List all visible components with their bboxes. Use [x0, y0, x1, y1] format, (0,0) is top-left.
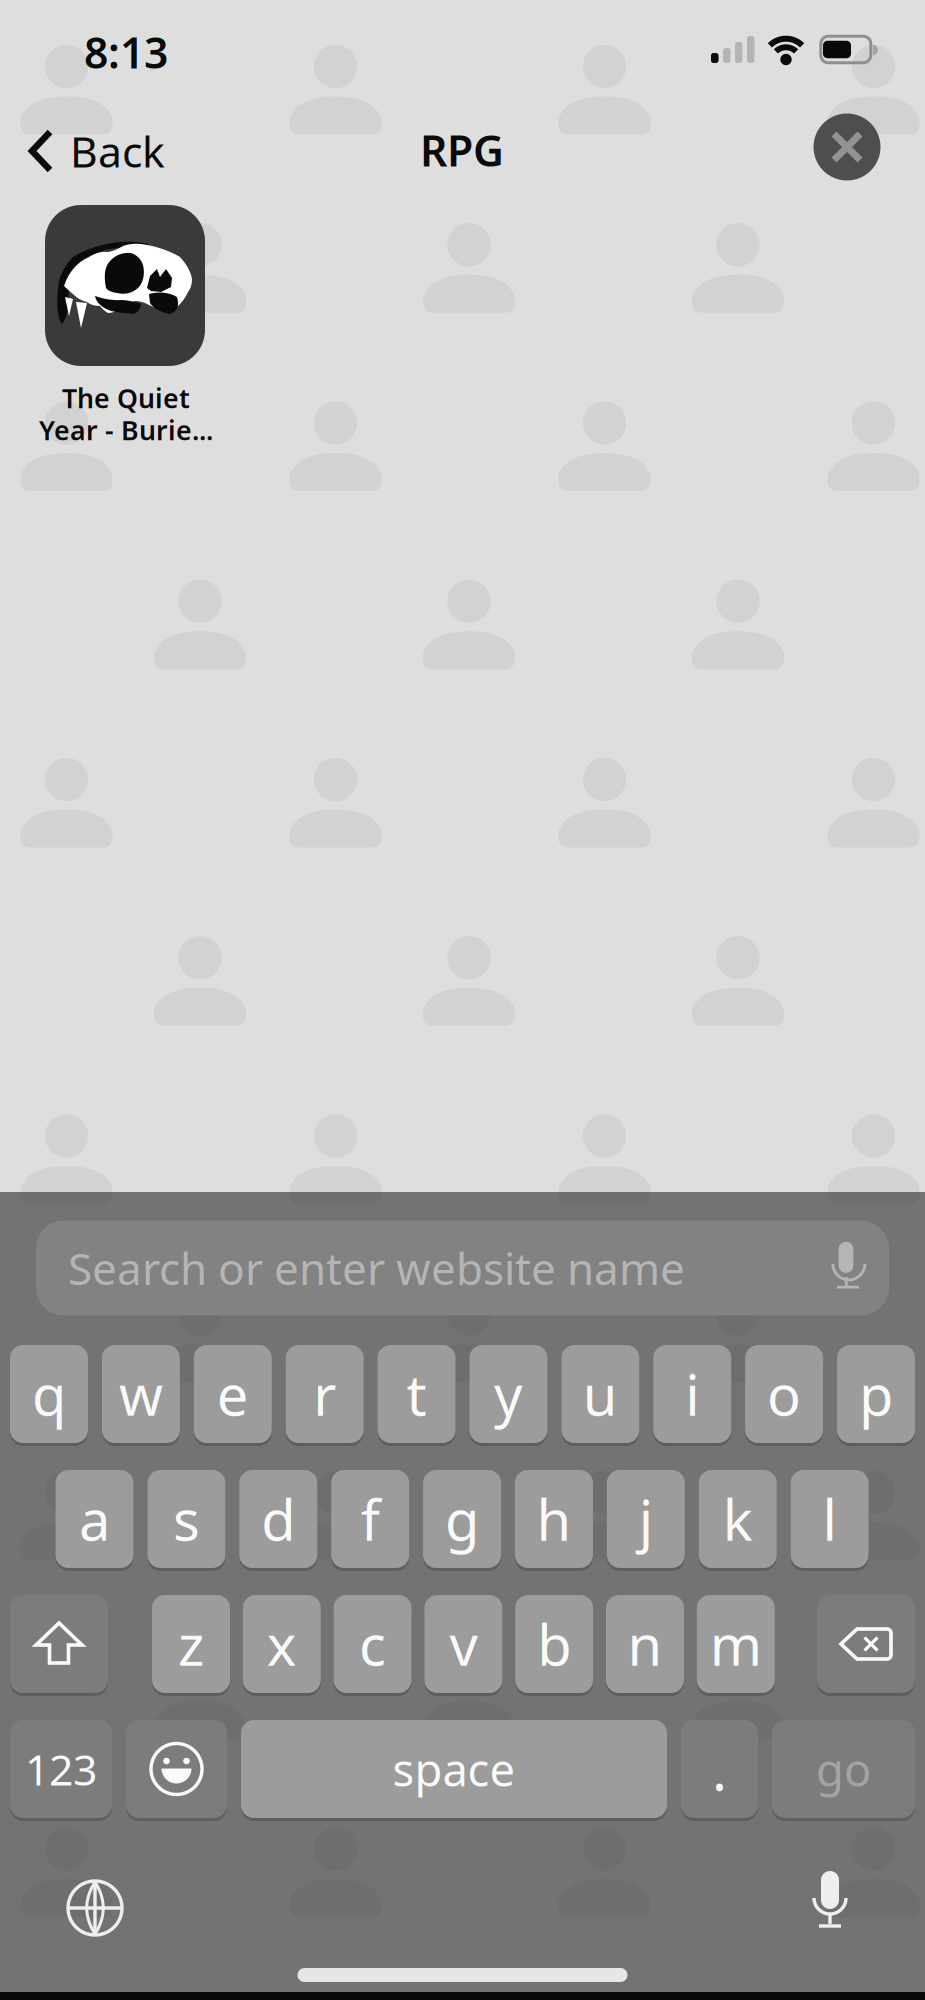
button[interactable]: d — [239, 1468, 317, 1570]
button[interactable]: Search or enter website name — [36, 1220, 889, 1315]
staticText: a — [79, 1482, 110, 1556]
button[interactable]: v — [424, 1593, 502, 1695]
staticText: i — [685, 1357, 699, 1431]
staticText: b — [537, 1607, 571, 1681]
button[interactable]: Close — [813, 113, 880, 180]
button[interactable]: 123 — [10, 1718, 112, 1820]
button[interactable]: Back — [12, 121, 182, 181]
button[interactable]: n — [606, 1593, 684, 1695]
staticText: g — [445, 1482, 479, 1556]
button[interactable]: . — [681, 1718, 758, 1820]
button[interactable]: m — [697, 1593, 775, 1695]
staticText: j — [639, 1482, 653, 1556]
staticText: e — [217, 1357, 249, 1431]
button[interactable]: Emoji — [126, 1718, 227, 1820]
button[interactable]: l — [791, 1468, 869, 1570]
button[interactable]: s — [147, 1468, 225, 1570]
button[interactable]: k — [699, 1468, 777, 1570]
button[interactable]: t — [378, 1343, 456, 1445]
staticText: RPG — [420, 122, 504, 178]
staticText: Search or enter website name — [68, 1239, 685, 1297]
staticText: n — [627, 1607, 662, 1681]
staticText: c — [359, 1607, 386, 1681]
button[interactable]: Next keyboard — [65, 1878, 125, 1938]
button[interactable]: Delete — [817, 1593, 915, 1695]
staticText: The Quiet — [62, 380, 190, 416]
staticText: o — [767, 1357, 801, 1431]
staticText: Back — [70, 123, 165, 179]
button[interactable]: g — [423, 1468, 501, 1570]
button[interactable]: o — [745, 1343, 823, 1445]
staticText: y — [494, 1357, 523, 1431]
button[interactable]: p — [837, 1343, 915, 1445]
button[interactable]: c — [334, 1593, 412, 1695]
staticText: x — [267, 1607, 297, 1681]
staticText: h — [536, 1482, 571, 1556]
staticText: v — [449, 1607, 477, 1681]
button[interactable]: w — [102, 1343, 180, 1445]
button[interactable]: y — [469, 1343, 547, 1445]
staticText: m — [710, 1607, 762, 1681]
button[interactable]: u — [561, 1343, 639, 1445]
button[interactable]: b — [515, 1593, 593, 1695]
button[interactable]: Dictation — [800, 1868, 860, 1938]
staticText: f — [361, 1482, 380, 1556]
staticText: . — [712, 1732, 727, 1806]
button[interactable]: i — [653, 1343, 731, 1445]
button[interactable]: z — [152, 1593, 230, 1695]
button[interactable]: h — [515, 1468, 593, 1570]
staticText: d — [261, 1482, 295, 1556]
staticText: space — [392, 1739, 515, 1799]
button[interactable]: go — [772, 1718, 915, 1820]
button[interactable]: q — [10, 1343, 88, 1445]
staticText: 123 — [25, 1741, 97, 1797]
button[interactable]: a — [55, 1468, 133, 1570]
staticText: k — [723, 1482, 753, 1556]
button[interactable]: space — [241, 1718, 667, 1820]
staticText: go — [816, 1739, 871, 1799]
staticText: t — [407, 1357, 427, 1431]
staticText: s — [173, 1482, 200, 1556]
button[interactable]: f — [331, 1468, 409, 1570]
staticText: w — [119, 1357, 163, 1431]
button[interactable]: The Quiet — [0, 0, 925, 2000]
button[interactable]: e — [194, 1343, 272, 1445]
staticText: z — [178, 1607, 204, 1681]
staticText: q — [32, 1357, 66, 1431]
button[interactable]: x — [243, 1593, 321, 1695]
staticText: r — [313, 1357, 336, 1431]
button[interactable]: j — [607, 1468, 685, 1570]
staticText: 8:13 — [84, 24, 168, 80]
staticText: Year - Burie... — [39, 412, 213, 448]
staticText: l — [823, 1482, 837, 1556]
staticText: u — [583, 1357, 618, 1431]
button[interactable]: r — [286, 1343, 364, 1445]
staticText: p — [859, 1357, 893, 1431]
button[interactable]: Shift — [10, 1593, 108, 1695]
